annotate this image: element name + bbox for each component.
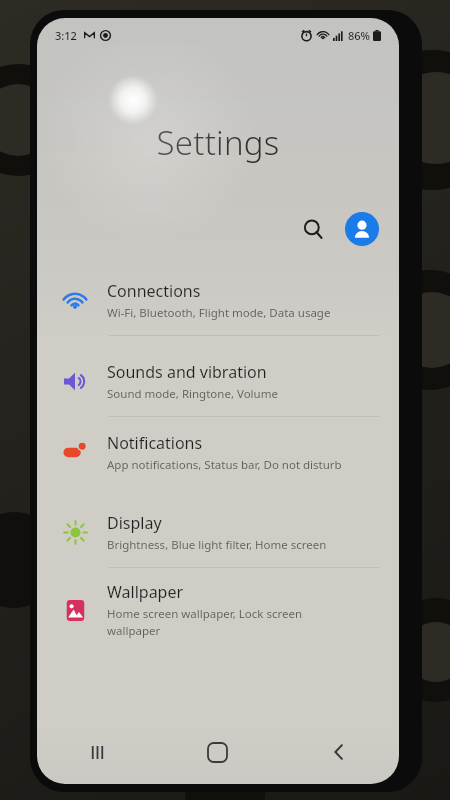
staticText: Wi-Fi, Bluetooth, Flight mode, Data usag…	[107, 305, 331, 321]
staticText: Connections	[107, 280, 201, 302]
staticText: Sounds and vibration	[107, 361, 267, 383]
staticText: Settings	[37, 120, 399, 165]
staticText: Wallpaper	[107, 581, 184, 603]
button[interactable]: Home	[157, 730, 278, 774]
staticText: App notifications, Status bar, Do not di…	[107, 457, 342, 473]
staticText: 3:12	[55, 28, 77, 43]
button[interactable]: Recent apps	[37, 730, 157, 774]
button[interactable]: Wallpaper	[37, 568, 399, 648]
button[interactable]: Search settings	[293, 209, 333, 249]
button[interactable]: Connections	[37, 265, 399, 336]
staticText: Brightness, Blue light filter, Home scre…	[107, 537, 327, 553]
button[interactable]: Samsung account	[345, 212, 379, 246]
staticText: 86%	[348, 28, 370, 43]
staticText: Display	[107, 512, 162, 534]
staticText: Sound mode, Ringtone, Volume	[107, 386, 278, 402]
button[interactable]: Sounds and vibration	[37, 346, 399, 417]
button[interactable]: Back	[278, 730, 399, 774]
button[interactable]: Display	[37, 497, 399, 568]
staticText: Home screen wallpaper, Lock screen wallp…	[107, 606, 303, 638]
button[interactable]: Notifications	[37, 417, 399, 487]
staticText: Notifications	[107, 432, 203, 454]
